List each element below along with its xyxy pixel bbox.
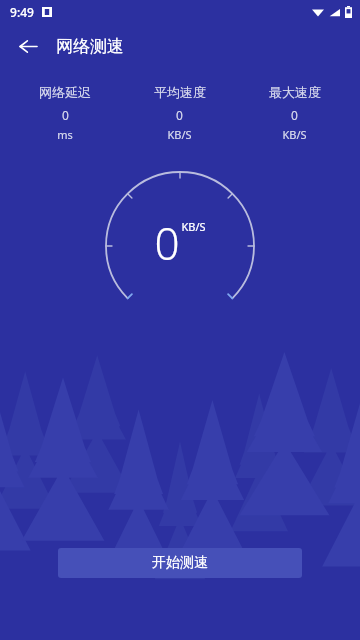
- staticText: KB/S: [181, 219, 206, 234]
- button[interactable]: 开始测速: [58, 548, 302, 578]
- staticText: 网络延迟: [39, 84, 91, 100]
- button[interactable]: Back: [8, 26, 48, 66]
- staticText: KB/S: [167, 127, 192, 142]
- staticText: 最大速度: [269, 84, 321, 100]
- staticText: ms: [57, 127, 73, 142]
- staticText: 0: [154, 213, 180, 273]
- staticText: 平均速度: [154, 84, 206, 100]
- staticText: 网络测速: [56, 36, 124, 57]
- staticText: 0: [62, 107, 69, 123]
- staticText: 0: [176, 107, 183, 123]
- staticText: 0: [291, 107, 298, 123]
- staticText: 9:49: [10, 4, 34, 20]
- staticText: KB/S: [282, 127, 307, 142]
- staticText: 开始测速: [152, 554, 208, 572]
